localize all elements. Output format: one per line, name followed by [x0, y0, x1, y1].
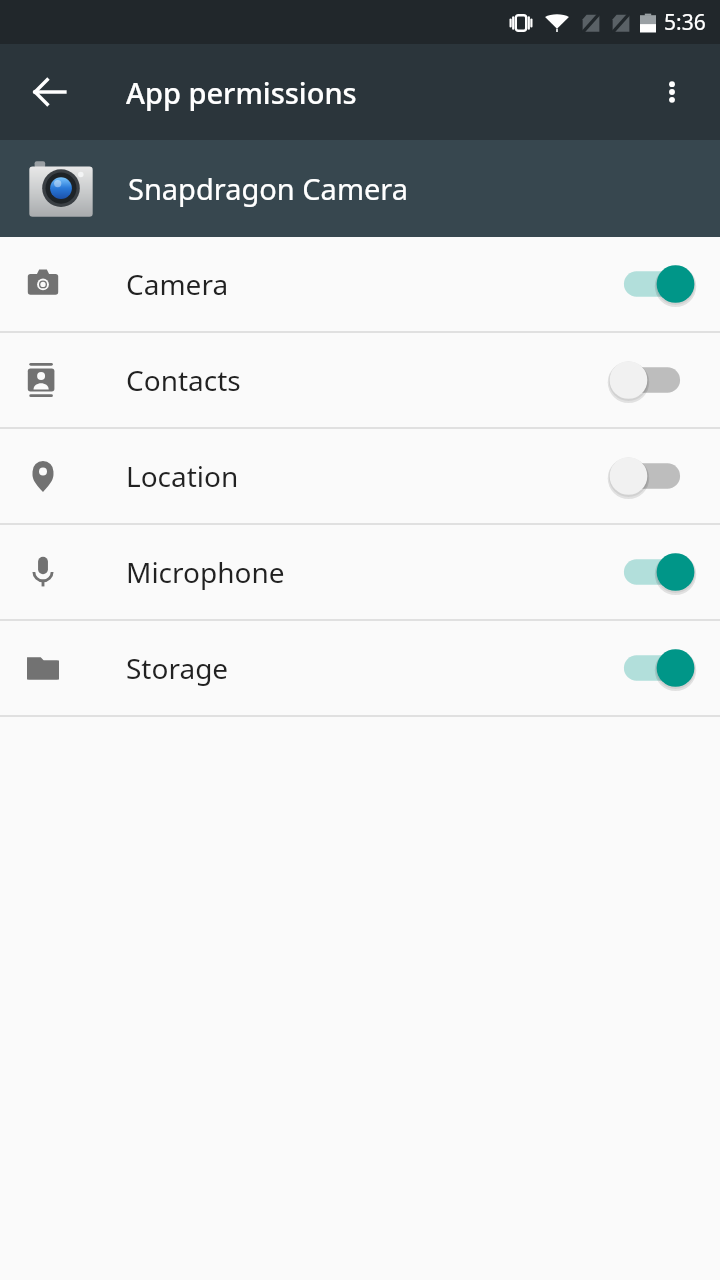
button[interactable]: Camera — [0, 237, 720, 331]
button[interactable]: Microphone permission toggle — [614, 544, 690, 600]
button[interactable]: Back — [8, 50, 92, 134]
button[interactable]: Contacts — [0, 333, 720, 427]
staticText: 5:36 — [664, 8, 706, 37]
button[interactable]: Microphone — [0, 525, 720, 619]
staticText: Location — [126, 457, 239, 495]
staticText: Camera — [126, 265, 229, 303]
button[interactable]: More options — [634, 54, 710, 130]
staticText: Storage — [126, 649, 229, 687]
button[interactable]: Storage permission toggle — [614, 640, 690, 696]
staticText: Snapdragon Camera — [128, 169, 409, 208]
button[interactable]: Location — [0, 429, 720, 523]
button[interactable]: Storage — [0, 621, 720, 715]
button[interactable]: Location permission toggle — [614, 448, 690, 504]
button[interactable]: Contacts permission toggle — [614, 352, 690, 408]
staticText: Contacts — [126, 361, 241, 399]
staticText: App permissions — [126, 73, 357, 112]
button[interactable]: Snapdragon Camera — [0, 140, 720, 237]
button[interactable]: Camera permission toggle — [614, 256, 690, 312]
staticText: Microphone — [126, 553, 285, 591]
